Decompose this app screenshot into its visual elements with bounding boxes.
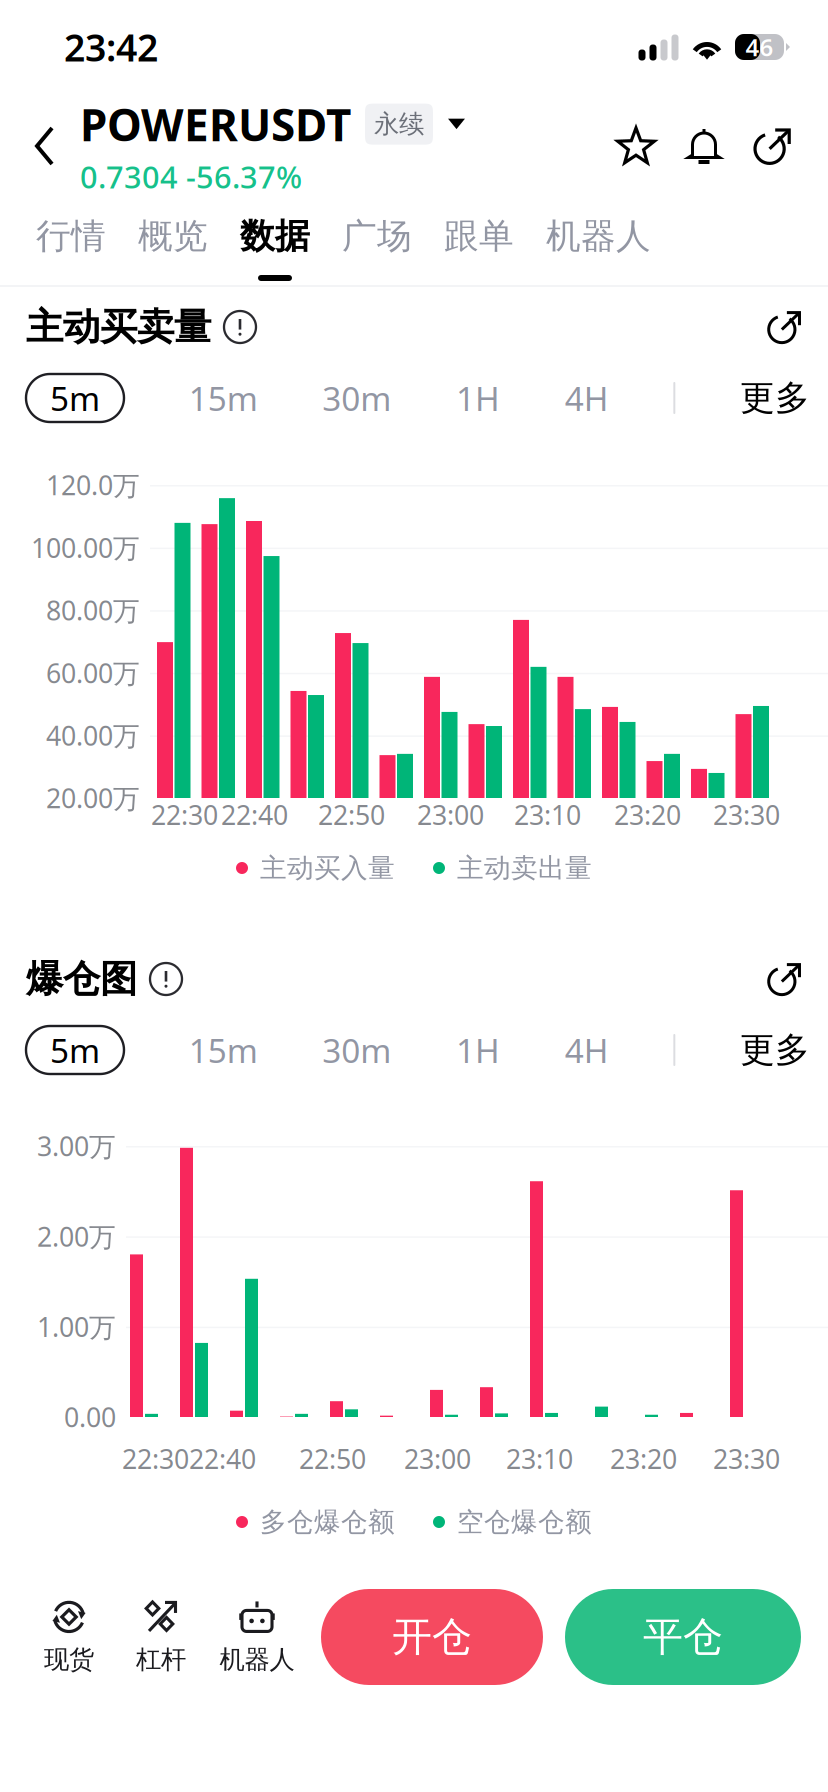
staticText: 15m [189,376,258,420]
staticText: 更多 [740,377,810,419]
button[interactable]: 概览 [122,198,224,285]
button[interactable]: 平仓 [565,1589,801,1685]
button[interactable]: 15m [189,1026,258,1074]
button[interactable]: Open 爆仓图 full screen [744,939,828,1019]
staticText: 概览 [138,215,208,258]
staticText: 空仓爆仓额 [457,1506,592,1538]
staticText: 主动买入量 [260,852,395,884]
staticText: 60.00万 [46,655,140,690]
button[interactable]: Open 主动买卖量 full screen [744,287,828,367]
button[interactable]: 30m [322,1026,391,1074]
button[interactable]: 广场 [326,198,428,285]
staticText: 广场 [342,215,412,258]
staticText: 15m [189,1028,258,1072]
button[interactable]: 机器人 [207,1599,307,1675]
staticText: 2.00万 [37,1219,116,1254]
button[interactable]: 4H [565,374,609,422]
staticText: 开仓 [392,1612,472,1661]
staticText: 23:00 [404,1441,471,1476]
staticText: 23:10 [514,797,581,832]
staticText: 46 [745,31,773,63]
staticText: 3.00万 [37,1128,116,1164]
staticText: 数据 [240,215,310,258]
button[interactable]: 4H [565,1026,609,1074]
staticText: 4H [565,1028,609,1072]
staticText: 23:30 [713,1441,780,1476]
button[interactable]: 5m [26,1026,124,1074]
staticText: 0.7304 -56.37% [80,156,302,197]
staticText: 23:10 [506,1441,573,1476]
staticText: 23:30 [713,797,780,832]
button[interactable]: 1H [456,1026,500,1074]
staticText: 多仓爆仓额 [260,1506,395,1538]
button[interactable]: Price alerts [670,98,738,194]
staticText: 行情 [36,215,106,258]
staticText: 5m [50,1028,100,1072]
staticText: 22:40 [221,797,288,832]
staticText: 永续 [374,109,424,140]
staticText: 22:30 [122,1441,189,1476]
staticText: 更多 [740,1029,810,1071]
button[interactable]: 开仓 [321,1589,543,1685]
staticText: 1H [456,376,500,420]
button[interactable]: 行情 [20,198,122,285]
button[interactable]: 30m [322,374,391,422]
staticText: 22:40 [189,1441,256,1476]
staticText: 现货 [44,1644,94,1675]
button[interactable]: 杠杆 [115,1599,207,1675]
staticText: 5m [50,376,100,420]
staticText: 平仓 [643,1612,723,1661]
staticText: 23:00 [417,797,484,832]
staticText: 22:50 [299,1441,366,1476]
button[interactable]: 机器人 [530,198,667,285]
staticText: 120.0万 [46,467,140,503]
staticText: 0.00 [64,1399,116,1435]
staticText: POWERUSDT [80,95,351,153]
staticText: 22:50 [318,797,385,832]
button[interactable]: 更多 [740,1026,810,1074]
staticText: 80.00万 [46,592,140,628]
staticText: 杠杆 [136,1644,186,1675]
staticText: 主动买卖量 [26,304,211,350]
staticText: 20.00万 [46,780,140,816]
staticText: 22:30 [151,797,218,832]
button[interactable]: 更多 [740,374,810,422]
button[interactable]: 15m [189,374,258,422]
staticText: 4H [565,376,609,420]
staticText: 跟单 [444,215,514,258]
button[interactable]: 1H [456,374,500,422]
staticText: 30m [322,1028,391,1072]
button[interactable]: 数据 [224,198,326,285]
staticText: 100.00万 [31,530,140,565]
staticText: 机器人 [219,1644,294,1675]
staticText: 机器人 [546,215,651,258]
staticText: 30m [322,376,391,420]
staticText: 1H [456,1028,500,1072]
staticText: 1.00万 [37,1309,116,1344]
button[interactable]: Back [0,94,80,198]
staticText: 主动卖出量 [457,852,592,884]
button[interactable]: 跟单 [428,198,530,285]
button[interactable]: 5m [26,374,124,422]
button[interactable]: Share [738,98,828,194]
staticText: 23:20 [610,1441,677,1476]
button[interactable]: Favorite [602,98,670,194]
staticText: 23:42 [64,22,158,72]
staticText: 23:20 [614,797,681,832]
staticText: 40.00万 [46,718,140,753]
button[interactable]: 现货 [23,1599,115,1675]
staticText: 爆仓图 [26,956,137,1002]
